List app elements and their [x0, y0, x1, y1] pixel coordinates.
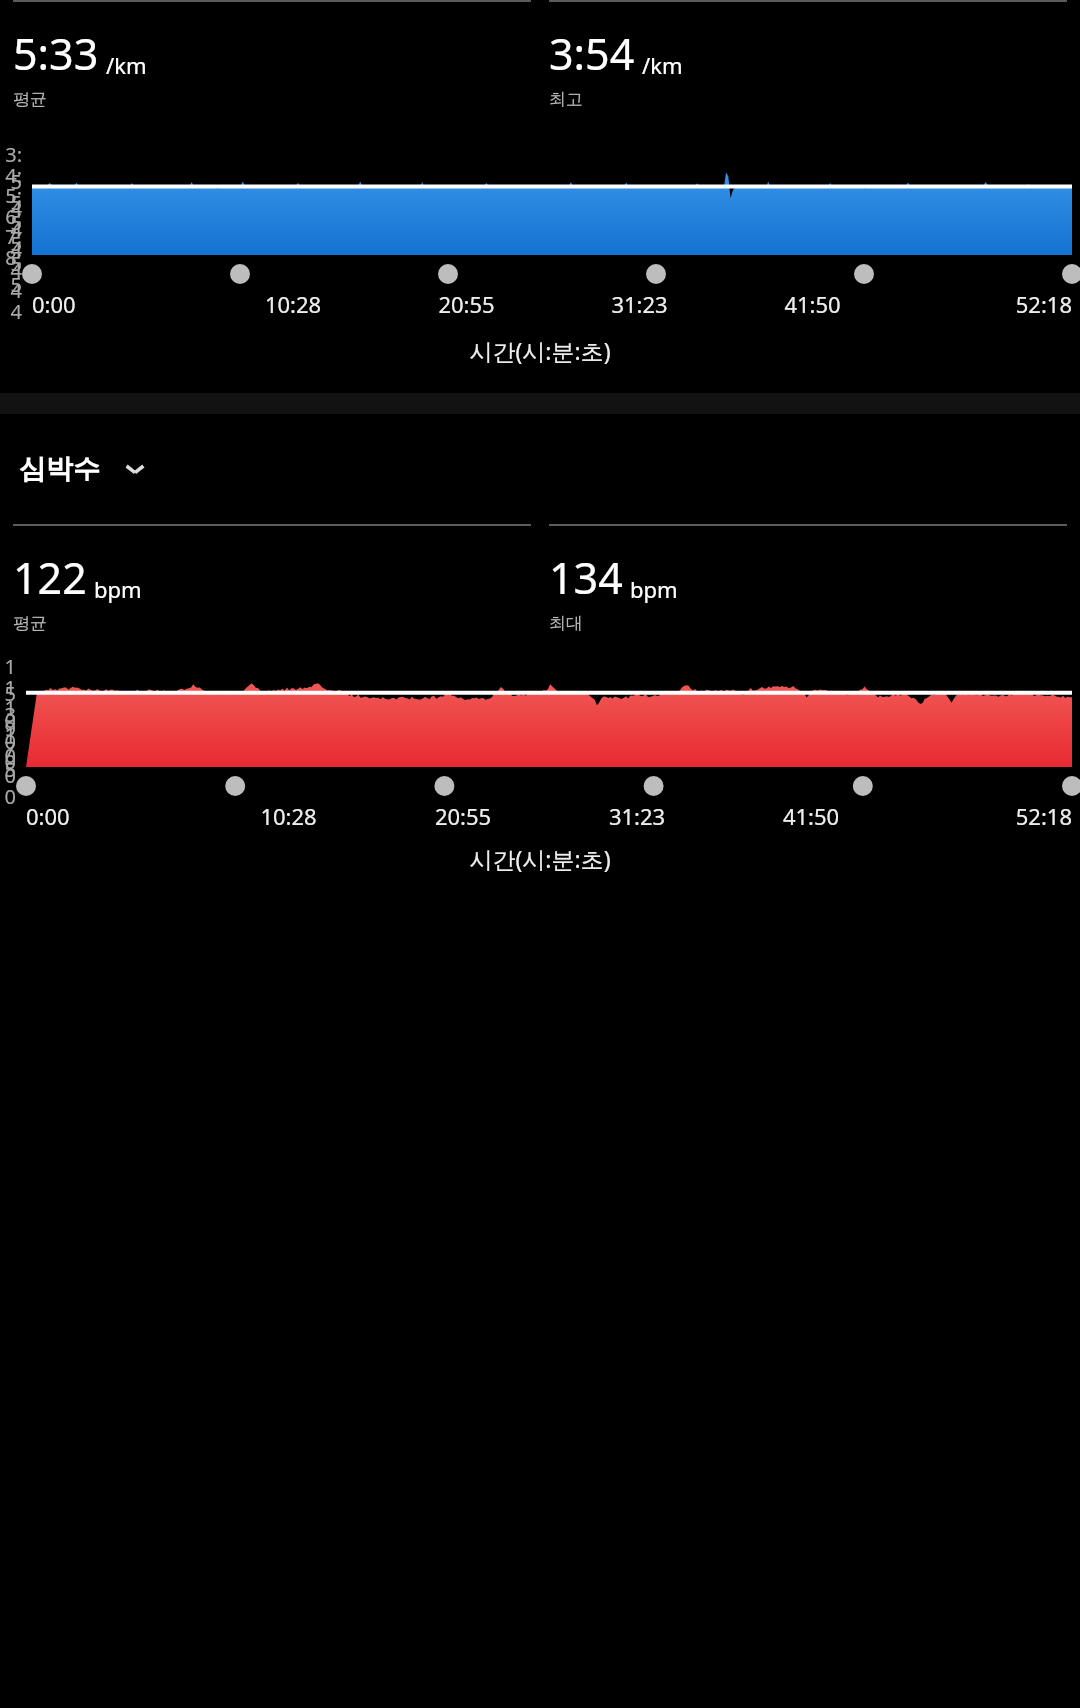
other: Expand heart rate	[120, 454, 150, 484]
staticText: 시간(시:분:초)	[0, 335, 1080, 366]
staticText: 0:00	[32, 289, 206, 319]
staticText: 31:23	[550, 801, 724, 831]
staticText: 3:54	[0, 141, 22, 222]
staticText: 0:00	[26, 801, 201, 831]
staticText: 3:54	[549, 24, 635, 83]
button[interactable]: 심박수	[19, 452, 1080, 486]
staticText: 20:55	[376, 801, 550, 831]
staticText: /km	[642, 50, 683, 80]
staticText: 최대	[549, 613, 583, 634]
staticText: bpm	[94, 574, 142, 604]
staticText: 6:54	[0, 203, 22, 284]
staticText: 5:33	[13, 24, 99, 83]
staticText: 50	[0, 756, 16, 810]
staticText: 52:18	[898, 801, 1072, 831]
staticText: 8:54	[0, 244, 22, 325]
staticText: bpm	[630, 574, 678, 604]
staticText: 20:55	[380, 289, 553, 319]
staticText: 41:50	[726, 289, 899, 319]
staticText: 134	[549, 548, 623, 607]
staticText: 심박수	[19, 452, 100, 486]
staticText: 5:54	[0, 182, 22, 263]
staticText: 31:23	[553, 289, 726, 319]
staticText: 130	[0, 674, 16, 755]
staticText: 평균	[13, 613, 47, 634]
staticText: 41:50	[724, 801, 898, 831]
staticText: 시간(시:분:초)	[0, 843, 1080, 874]
staticText: 7:54	[0, 223, 22, 304]
staticText: 평균	[13, 89, 47, 110]
staticText: 110	[0, 694, 16, 775]
staticText: 90	[0, 715, 16, 769]
staticText: 10:28	[206, 289, 380, 319]
staticText: 150	[0, 653, 16, 734]
staticText: 52:18	[899, 289, 1072, 319]
staticText: /km	[106, 50, 147, 80]
staticText: 70	[0, 735, 16, 789]
staticText: 최고	[549, 89, 583, 110]
staticText: 4:54	[0, 162, 22, 243]
staticText: 10:28	[201, 801, 376, 831]
staticText: 122	[13, 548, 87, 607]
